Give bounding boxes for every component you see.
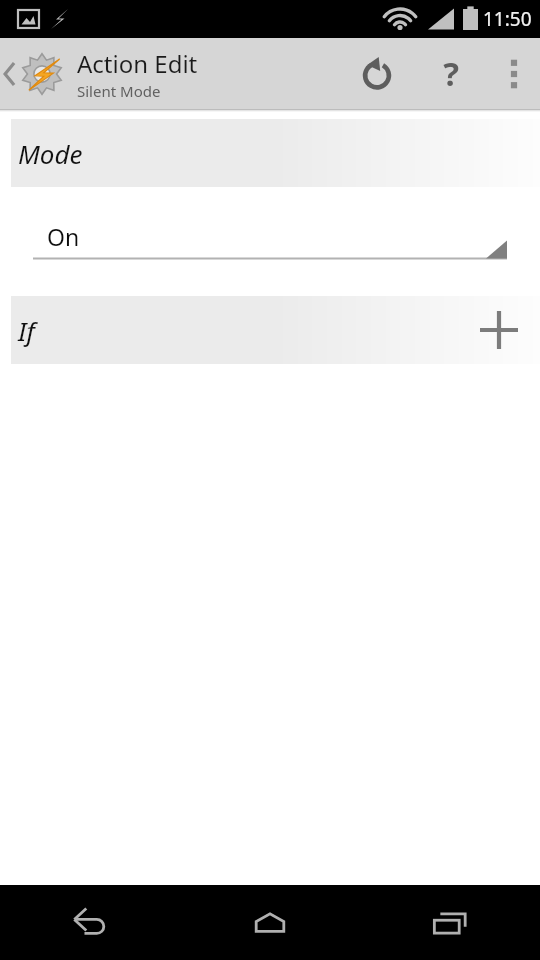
staticText: Mode [18, 136, 83, 171]
staticText: Silent Mode [77, 81, 161, 101]
staticText: ? [443, 51, 459, 96]
staticText: If [18, 313, 35, 348]
button[interactable]: Help [414, 38, 488, 109]
button[interactable]: Reset [340, 38, 414, 109]
staticText: 11:50 [483, 6, 532, 32]
staticText: On [47, 221, 80, 252]
button[interactable]: If [11, 296, 540, 364]
button[interactable]: Add condition [473, 304, 525, 356]
button[interactable]: More options [488, 38, 540, 109]
button[interactable]: Mode [11, 119, 540, 187]
button[interactable]: Home [180, 885, 360, 960]
staticText: Action Edit [77, 47, 198, 80]
button[interactable]: Recent apps [360, 885, 540, 960]
button[interactable]: On [33, 217, 507, 261]
button[interactable]: Up, Tasker [0, 52, 68, 96]
button[interactable]: Back [0, 885, 180, 960]
